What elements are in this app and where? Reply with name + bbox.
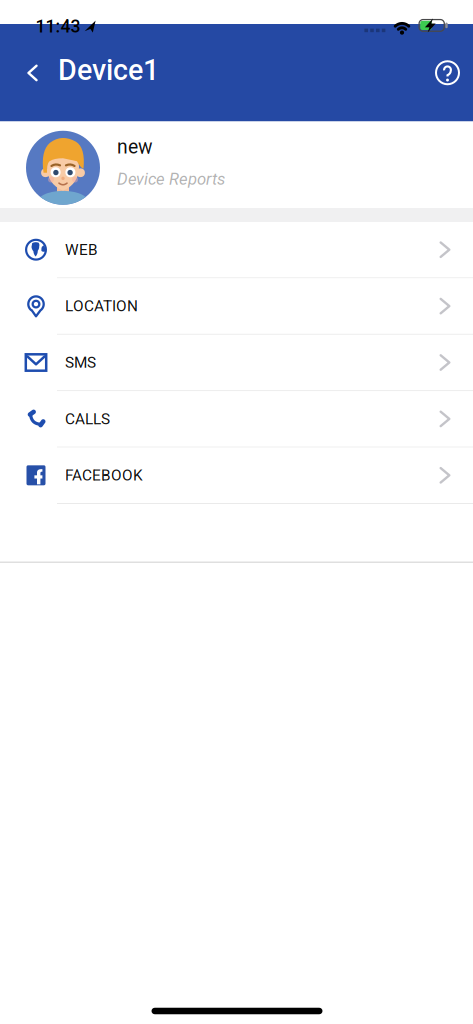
button[interactable]: Help [435, 60, 473, 85]
button[interactable]: WEB [0, 222, 473, 277]
staticText: FACEBOOK [65, 466, 143, 484]
button[interactable]: CALLS [0, 391, 473, 447]
staticText: Device1 [58, 53, 159, 87]
staticText: WEB [65, 241, 98, 259]
button[interactable]: LOCATION [0, 278, 473, 334]
button[interactable]: FACEBOOK [0, 448, 473, 503]
staticText: CALLS [65, 410, 110, 428]
button[interactable]: SMS [0, 335, 473, 390]
staticText: SMS [65, 353, 96, 371]
staticText: Device Reports [117, 169, 225, 189]
button[interactable]: Back [0, 62, 46, 84]
staticText: 11:43 [35, 16, 80, 37]
staticText: LOCATION [65, 297, 138, 315]
staticText: new [117, 136, 153, 158]
